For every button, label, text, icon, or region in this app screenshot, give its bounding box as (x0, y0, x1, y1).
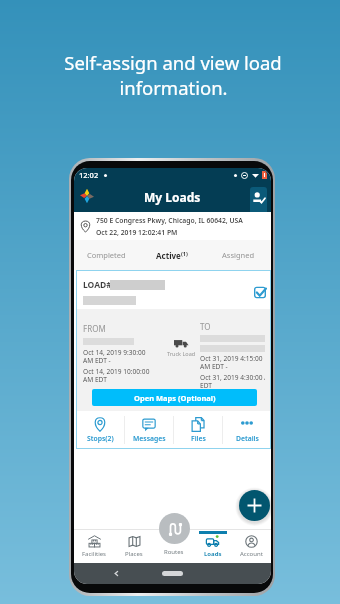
staticText: Active (156, 250, 181, 261)
staticText: FROM (83, 323, 106, 334)
staticText: Oct 31, 2019 4:15:00 AM EDT - (200, 354, 263, 371)
staticText: Files (191, 434, 206, 443)
staticText: Places (125, 550, 143, 558)
staticText: Facilities (82, 550, 106, 558)
button[interactable]: Account (232, 529, 271, 563)
staticText: Oct 22, 2019 12:02:41 PM (96, 228, 178, 237)
button[interactable]: Open Maps (Optional) (92, 389, 257, 406)
button[interactable]: Stops(2) (76, 411, 124, 449)
button[interactable]: Assigned (205, 240, 271, 270)
staticText: My Loads (144, 189, 201, 205)
staticText: Self-assign and view load (64, 50, 282, 75)
staticText: Oct 31, 2019 4:30:00 AM EDT (200, 373, 265, 390)
button[interactable]: Routes (154, 529, 193, 563)
staticText: (1) (181, 250, 188, 257)
staticText: Oct 14, 2019 10:00:00 AM EDT (83, 367, 150, 384)
staticText: 12:02 (79, 170, 99, 180)
button[interactable]: Facilities (74, 529, 114, 563)
button[interactable]: Details (223, 411, 271, 449)
staticText: LOAD# (83, 279, 112, 291)
button[interactable]: Assign driver (250, 187, 267, 212)
button[interactable]: Select load (254, 286, 267, 299)
button[interactable]: Routes (159, 513, 190, 544)
staticText: Account (240, 550, 263, 558)
button[interactable]: Places (114, 529, 154, 563)
staticText: Loads (204, 550, 222, 558)
staticText: information. (119, 75, 228, 100)
staticText: Assigned (222, 250, 255, 260)
staticText: 750 E Congress Pkwy, Chicago, IL 60642, … (96, 216, 243, 225)
button[interactable]: Add load (239, 490, 270, 521)
button[interactable]: Files (174, 411, 222, 449)
button[interactable]: Completed (74, 240, 139, 270)
staticText: Details (236, 434, 259, 443)
staticText: Routes (164, 548, 184, 556)
staticText: Completed (87, 250, 126, 260)
staticText: Open Maps (Optional) (134, 393, 216, 403)
button[interactable]: Active (139, 240, 205, 270)
button[interactable]: Loads (193, 529, 232, 563)
button[interactable]: Messages (125, 411, 173, 449)
staticText: Stops(2) (87, 434, 114, 443)
staticText: Messages (133, 434, 166, 443)
staticText: Oct 14, 2019 9:30:00 AM EDT - (83, 348, 146, 365)
staticText: TO (200, 321, 211, 332)
staticText: Truck Load (167, 350, 196, 357)
